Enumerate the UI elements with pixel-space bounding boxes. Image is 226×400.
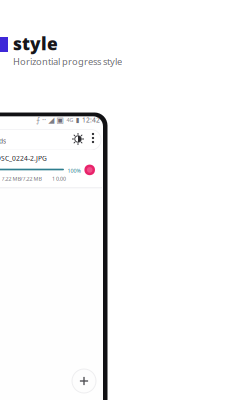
staticText: 100% [67,167,80,174]
staticText: ·· [42,115,46,125]
staticText: ⨍ [36,115,40,125]
staticText: DSC_0224-2.JPG [0,154,47,163]
staticText: 4G [67,116,74,124]
button[interactable]: More options [89,131,97,145]
staticText: 7.22 MB/7.22 MB [1,175,41,182]
staticText: style [13,32,58,55]
staticText: Horizontial progress style [13,55,122,68]
button[interactable]: Add download [72,369,96,393]
staticText: ▣ [56,115,64,125]
staticText: 12:42 [82,116,100,124]
staticText: ads [0,137,6,145]
staticText: ▮ [76,116,80,124]
staticText: 1 0.00 [52,175,66,182]
staticText: ◢ [48,115,54,125]
button[interactable]: Brightness [71,132,84,145]
